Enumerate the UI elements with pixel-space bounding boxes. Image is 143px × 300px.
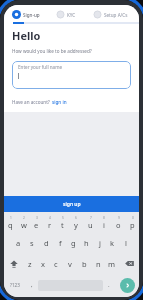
staticText: Setup A/Cs [104,12,128,18]
staticText: . [108,281,110,289]
button[interactable]: sign in [52,99,67,105]
staticText: u [88,220,93,230]
staticText: 4 [49,216,51,220]
button[interactable]: . [103,274,115,296]
button[interactable]: sign up [4,196,139,212]
staticText: 9 [118,216,120,220]
staticText: o [116,220,121,230]
staticText: 6 [75,216,77,220]
staticText: k [110,238,115,248]
button[interactable]: h [80,233,93,253]
staticText: a [16,238,21,248]
staticText: Sign-up [23,12,40,18]
staticText: 1 [10,216,12,220]
button[interactable]: s [25,233,39,253]
button[interactable]: f [53,233,67,253]
button[interactable]: 3 [30,213,43,233]
button[interactable]: KYC [56,10,93,19]
button[interactable]: g [67,233,80,253]
staticText: q [8,220,13,230]
button[interactable]: , [26,274,38,296]
button[interactable]: z [23,253,36,274]
staticText: 3 [36,216,38,220]
staticText: f [59,238,62,248]
button[interactable]: 9 [111,213,125,233]
staticText: d [44,238,49,248]
staticText: t [61,220,64,230]
button[interactable]: 7 [83,213,97,233]
staticText: How would you like to be addressed? [12,48,92,54]
staticText: m [108,259,116,269]
button[interactable]: 4 [43,213,56,233]
button[interactable]: 6 [69,213,83,233]
button[interactable]: n [91,253,105,274]
button[interactable]: 8 [97,213,111,233]
staticText: z [28,259,32,269]
button[interactable]: d [39,233,53,253]
button[interactable]: ?123 [4,274,26,296]
staticText: i [103,220,105,230]
staticText: e [34,220,39,230]
staticText: n [96,259,101,269]
button[interactable]: 2 [17,213,30,233]
staticText: c [54,259,58,269]
staticText: Enter your full name [18,64,63,70]
button[interactable]: c [49,253,63,274]
staticText: h [84,238,89,248]
staticText: , [31,281,33,289]
staticText: x [41,259,45,269]
button[interactable]: v [63,253,77,274]
button[interactable]: b [77,253,91,274]
staticText: j [99,238,101,248]
button[interactable]: l [119,233,132,253]
button[interactable]: Setup A/Cs [93,10,130,19]
staticText: v [68,259,72,269]
button[interactable]: Shift [4,253,23,274]
button[interactable]: Sign-up [12,10,56,19]
staticText: r [48,220,52,230]
staticText: y [74,220,78,230]
staticText: g [71,238,76,248]
staticText: l [125,238,127,248]
button[interactable]: x [36,253,49,274]
button[interactable]: j [93,233,106,253]
staticText: Hello [12,28,41,43]
button[interactable]: 5 [56,213,69,233]
staticText: w [21,220,27,230]
staticText: Have an account? [12,99,52,105]
staticText: 8 [103,216,105,220]
staticText: p [130,220,135,230]
staticText: 0 [132,216,134,220]
staticText: 7 [90,216,92,220]
staticText: 5 [62,216,64,220]
button[interactable]: Backspace [119,253,139,274]
button[interactable]: a [11,233,25,253]
staticText: sign up [63,201,81,208]
button[interactable]: m [105,253,119,274]
staticText: s [30,238,34,248]
staticText: KYC [67,12,76,18]
staticText: b [82,259,87,269]
staticText: ?123 [10,282,20,288]
staticText: sign in [52,99,67,105]
button[interactable]: Enter [115,274,139,296]
button[interactable]: 0 [125,213,139,233]
button[interactable]: Enter your full name [12,61,131,89]
button[interactable]: k [106,233,119,253]
button[interactable]: 1 [4,213,17,233]
staticText: 2 [23,216,25,220]
